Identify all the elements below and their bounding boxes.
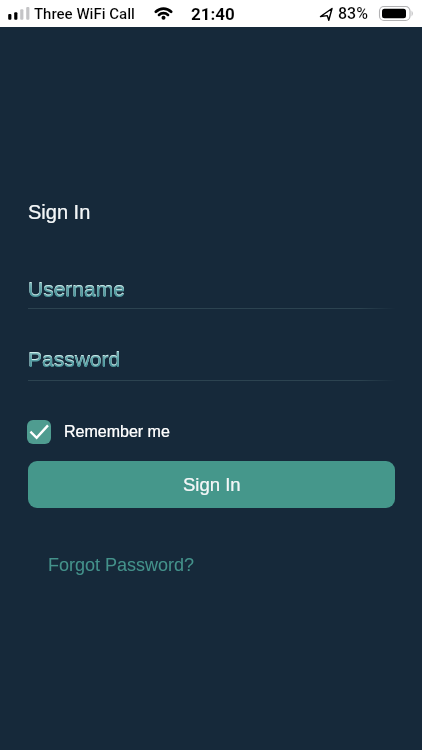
button[interactable]: Username [28,274,396,309]
staticText: Password [28,348,121,371]
button[interactable]: Sign In [28,461,395,508]
staticText: Password [28,347,121,370]
staticText: Username [28,277,125,300]
staticText: Sign In [183,474,241,495]
button[interactable]: Forgot Password? [48,555,195,575]
staticText: Remember me [64,423,170,441]
staticText: Sign In [28,201,91,223]
staticText: Three WiFi Call [34,5,135,23]
staticText: 21:40 [191,4,235,24]
staticText: 83% [338,4,368,23]
button[interactable]: Remember me [27,420,170,444]
staticText: Username [28,278,125,301]
staticText: Forgot Password? [48,555,195,575]
button[interactable]: Password [28,344,396,381]
